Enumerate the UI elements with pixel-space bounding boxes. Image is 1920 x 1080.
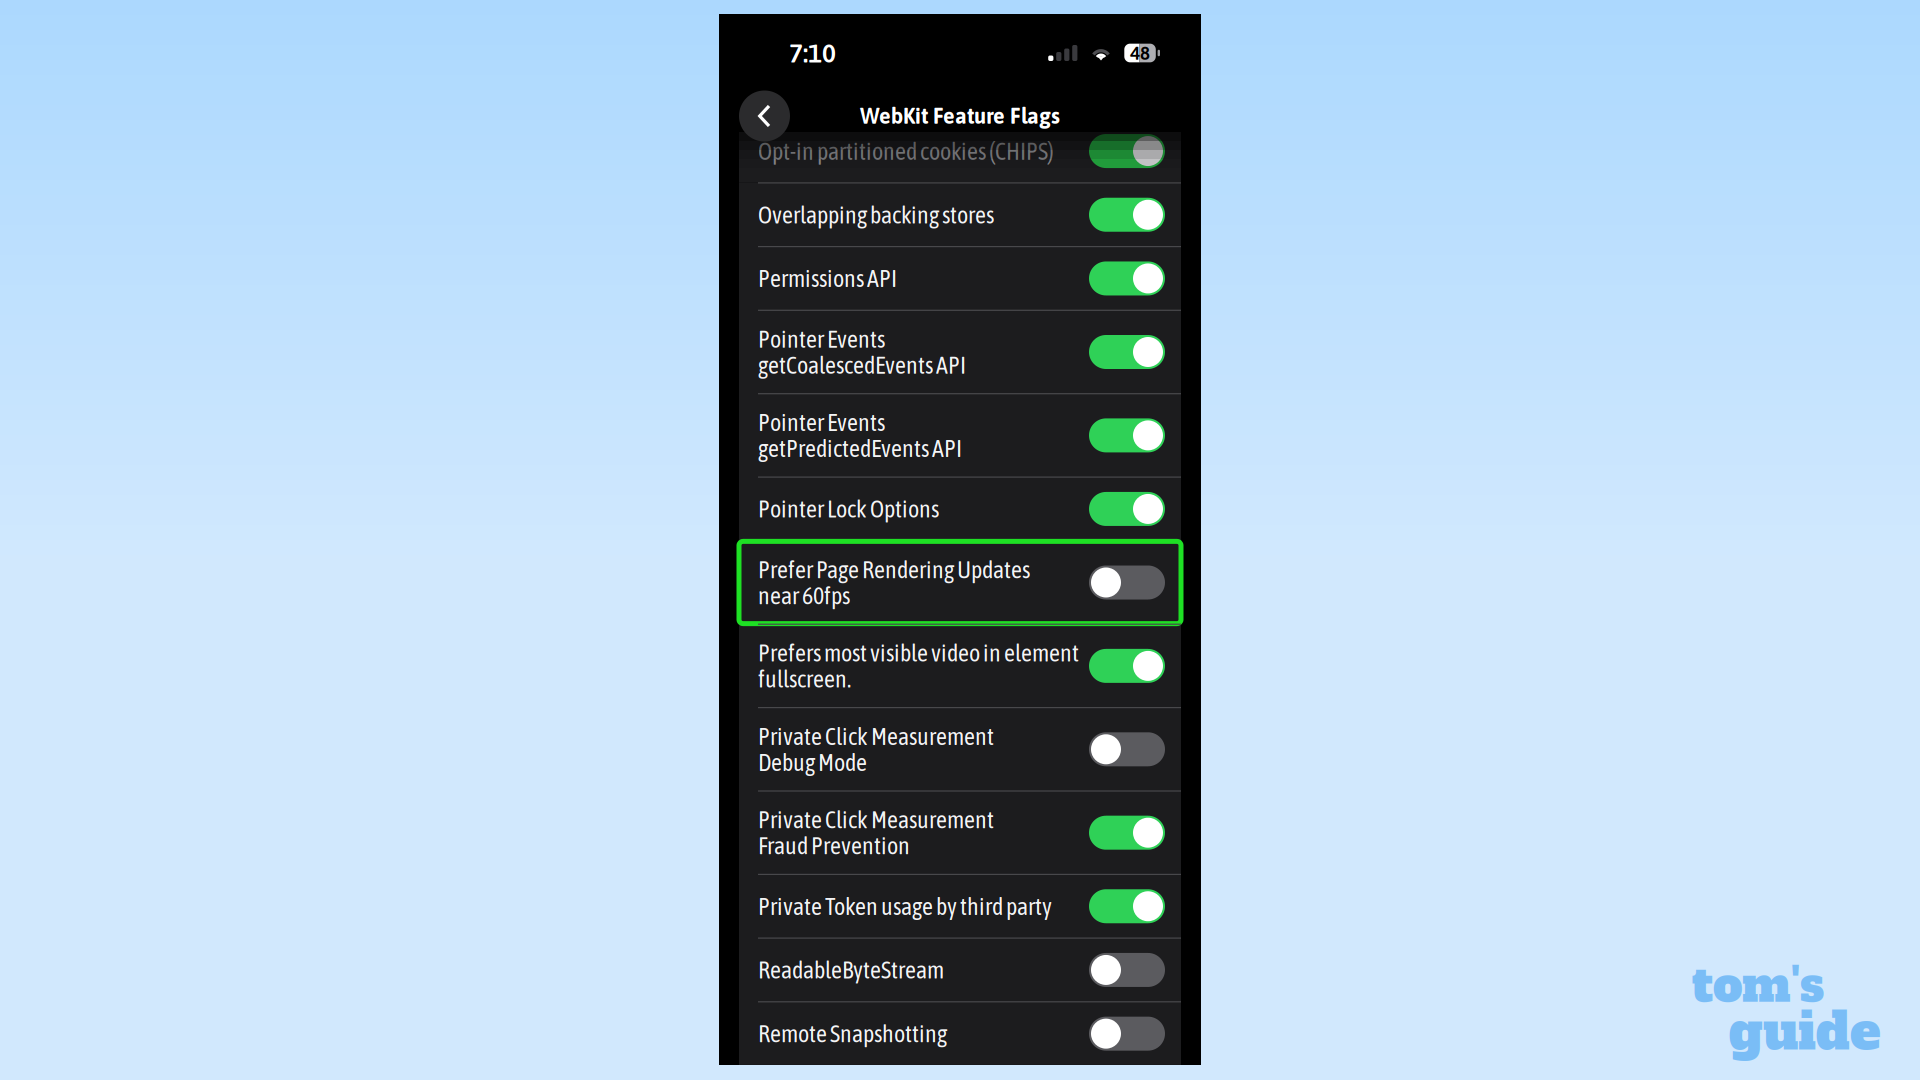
- staticText: fullscreen.: [758, 665, 851, 693]
- button[interactable]: Opt-in partitioned cookies (CHIPS): [739, 120, 1181, 182]
- staticText: Debug Mode: [758, 748, 867, 776]
- staticText: guide: [1729, 996, 1880, 1067]
- button[interactable]: Permissions API: [739, 247, 1181, 310]
- staticText: Pointer Lock Options: [758, 495, 939, 523]
- button[interactable]: Back: [739, 90, 790, 141]
- staticText: Private Click Measurement: [758, 722, 994, 750]
- staticText: Pointer Events: [758, 325, 885, 353]
- staticText: Private Click Measurement: [758, 806, 994, 833]
- button[interactable]: Private Click Measurement: [739, 708, 1181, 790]
- button[interactable]: Pointer Events: [739, 394, 1181, 476]
- staticText: Permissions API: [758, 265, 897, 292]
- staticText: 48: [1130, 42, 1150, 64]
- button[interactable]: Pointer Events: [739, 311, 1181, 393]
- staticText: Fraud Prevention: [758, 832, 910, 859]
- staticText: getCoalescedEvents API: [758, 351, 966, 379]
- button[interactable]: Prefers most visible video in element: [739, 625, 1181, 707]
- staticText: WebKit Feature Flags: [860, 104, 1060, 128]
- staticText: 7:10: [789, 38, 836, 68]
- staticText: Pointer Events: [758, 409, 885, 436]
- button[interactable]: Remote Snapshotting: [739, 1002, 1181, 1065]
- button[interactable]: ReadableByteStream: [739, 939, 1181, 1001]
- staticText: near 60fps: [758, 582, 850, 609]
- staticText: Overlapping backing stores: [758, 201, 994, 228]
- staticText: ReadableByteStream: [758, 956, 944, 984]
- button[interactable]: Overlapping backing stores: [739, 183, 1181, 246]
- button[interactable]: Private Token usage by third party: [739, 875, 1181, 937]
- button[interactable]: Prefer Page Rendering Updates: [739, 541, 1181, 624]
- staticText: getPredictedEvents API: [758, 435, 962, 462]
- staticText: Prefer Page Rendering Updates: [758, 556, 1030, 583]
- button[interactable]: Pointer Lock Options: [739, 478, 1181, 540]
- staticText: tom's: [1692, 953, 1824, 1017]
- staticText: Remote Snapshotting: [758, 1020, 947, 1047]
- staticText: Prefers most visible video in element: [758, 639, 1079, 667]
- staticText: Opt-in partitioned cookies (CHIPS): [758, 137, 1054, 165]
- staticText: Private Token usage by third party: [758, 892, 1052, 920]
- button[interactable]: Private Click Measurement: [739, 792, 1181, 874]
